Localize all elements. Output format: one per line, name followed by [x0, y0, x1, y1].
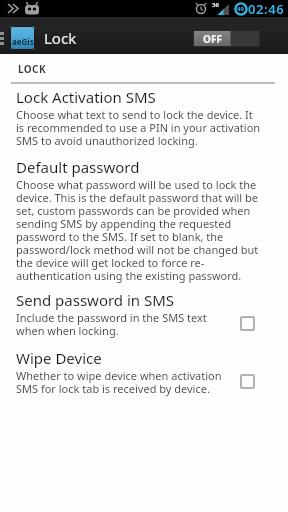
staticText: Lock Activation SMS: [16, 87, 156, 107]
button[interactable]: [240, 374, 255, 389]
staticText: Whether to wipe device when activation S…: [16, 368, 222, 396]
staticText: 36: [212, 1, 219, 9]
staticText: Lock: [44, 28, 77, 48]
staticText: Choose what text to send to lock the dev…: [16, 107, 261, 148]
staticText: Choose what password will be used to loc…: [16, 177, 259, 283]
button[interactable]: Lock Activation SMS: [0, 87, 288, 148]
staticText: OFF: [203, 32, 222, 46]
button[interactable]: Send password in SMS: [0, 290, 288, 338]
button[interactable]: [240, 316, 255, 331]
button[interactable]: Default password: [0, 157, 288, 283]
staticText: 02:46: [248, 0, 285, 17]
button[interactable]: Wipe Device: [0, 348, 288, 396]
staticText: Send password in SMS: [16, 290, 175, 310]
staticText: 49: [237, 5, 244, 13]
staticText: LOCK: [18, 62, 46, 76]
staticText: Include the password in the SMS text whe…: [16, 310, 207, 338]
staticText: Wipe Device: [16, 348, 102, 368]
button[interactable]: aeGis: [10, 26, 35, 50]
staticText: Default password: [16, 157, 140, 177]
button[interactable]: OFF: [193, 30, 260, 47]
staticText: aeGis: [12, 36, 34, 47]
